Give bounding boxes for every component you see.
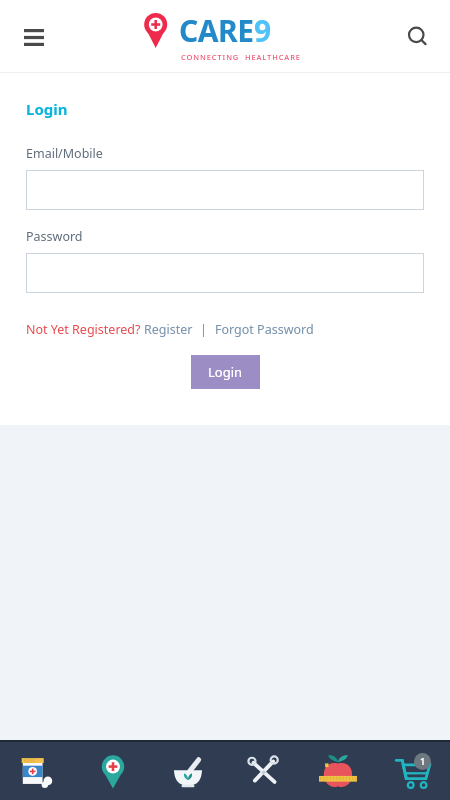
staticText: Not Yet Registered?: [26, 321, 141, 338]
button[interactable]: Search: [396, 15, 440, 59]
staticText: Register: [144, 321, 193, 338]
button[interactable]: Care9 logo: [135, 10, 315, 60]
button[interactable]: Surgery: [225, 742, 300, 800]
staticText: CARE: [179, 10, 254, 51]
button[interactable]: [26, 253, 424, 293]
staticText: Login: [26, 99, 68, 119]
button[interactable]: Menu: [12, 15, 56, 59]
staticText: Login: [208, 363, 243, 381]
button[interactable]: Cart: [375, 742, 450, 800]
staticText: 1: [420, 755, 426, 768]
button[interactable]: Find clinic: [75, 742, 150, 800]
button[interactable]: Forgot Password: [215, 321, 314, 338]
button[interactable]: Ayurveda: [150, 742, 225, 800]
button[interactable]: Login: [191, 355, 260, 389]
staticText: Forgot Password: [215, 321, 314, 338]
staticText: 9: [254, 10, 272, 51]
button[interactable]: Register: [144, 321, 193, 338]
button[interactable]: Diet: [300, 742, 375, 800]
button[interactable]: Medicines: [0, 742, 75, 800]
button[interactable]: [26, 170, 424, 210]
staticText: Email/Mobile: [26, 145, 103, 162]
staticText: Password: [26, 228, 83, 245]
staticText: |: [200, 321, 207, 338]
staticText: CONNECTING HEALTHCARE: [181, 52, 301, 60]
